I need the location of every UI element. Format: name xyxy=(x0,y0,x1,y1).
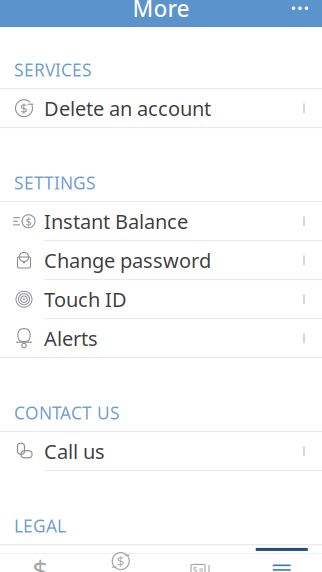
staticText: $ xyxy=(193,565,198,572)
staticText: LEGAL xyxy=(14,514,66,537)
button[interactable]: $ xyxy=(0,202,322,240)
staticText: Delete an account xyxy=(44,95,211,122)
staticText: Change password xyxy=(44,247,211,274)
button[interactable]: $ xyxy=(0,89,322,127)
button[interactable]: Alerts xyxy=(0,319,322,357)
button[interactable]: More options xyxy=(278,0,322,27)
staticText: $ xyxy=(25,214,31,228)
staticText: Call us xyxy=(44,438,105,465)
button[interactable]: $ xyxy=(161,554,241,572)
staticText: $ xyxy=(20,99,28,117)
staticText: $ xyxy=(117,552,125,570)
staticText: SERVICES xyxy=(14,58,92,81)
staticText: SETTINGS xyxy=(14,171,96,194)
button[interactable]: $ xyxy=(0,554,80,572)
staticText: Instant Balance xyxy=(44,208,188,235)
button[interactable]: Change password xyxy=(0,241,322,279)
button[interactable]: $ xyxy=(80,554,161,572)
staticText: CONTACT US xyxy=(14,401,120,424)
button[interactable]: More xyxy=(241,554,322,572)
staticText: Alerts xyxy=(44,325,98,352)
button[interactable]: Touch ID xyxy=(0,280,322,318)
staticText: $ xyxy=(32,551,48,572)
staticText: More xyxy=(132,0,189,23)
staticText: Touch ID xyxy=(44,286,127,313)
button[interactable]: Call us xyxy=(0,432,322,470)
